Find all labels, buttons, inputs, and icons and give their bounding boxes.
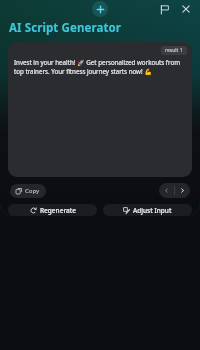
- button[interactable]: Close: [178, 1, 194, 17]
- staticText: Copy: [25, 187, 40, 195]
- button[interactable]: Adjust Input: [103, 204, 192, 216]
- staticText: result 1: [165, 47, 183, 54]
- button[interactable]: Regenerate: [8, 204, 97, 216]
- staticText: AI Script Generator: [9, 20, 122, 36]
- button[interactable]: Report: [156, 1, 172, 17]
- staticText: Invest in your health! 🚀 Get personalize…: [14, 58, 186, 76]
- button[interactable]: Add: [92, 1, 108, 17]
- staticText: Regenerate: [40, 206, 76, 215]
- button[interactable]: Copy: [10, 184, 46, 198]
- button[interactable]: Previous result: [159, 183, 174, 198]
- button[interactable]: Next result: [175, 183, 190, 198]
- staticText: Adjust Input: [133, 206, 172, 215]
